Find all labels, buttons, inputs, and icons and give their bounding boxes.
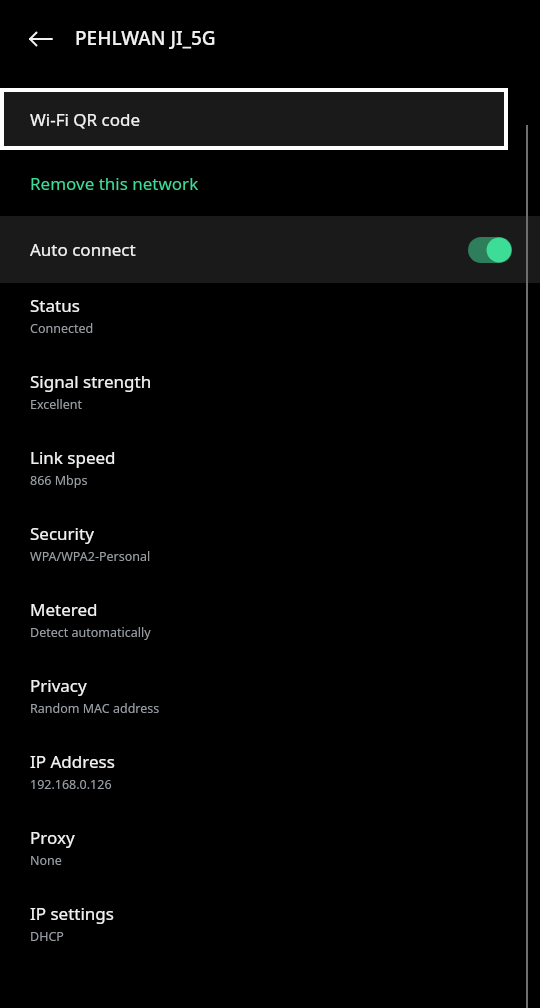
button[interactable]: Back: [19, 17, 63, 61]
staticText: IP Address: [30, 750, 115, 773]
button[interactable]: Privacy: [0, 663, 540, 739]
staticText: Link speed: [30, 446, 116, 469]
staticText: Proxy: [30, 826, 75, 849]
staticText: Random MAC address: [30, 700, 160, 717]
button[interactable]: Link speed: [0, 435, 540, 511]
staticText: 866 Mbps: [30, 472, 88, 489]
button[interactable]: Signal strength: [0, 359, 540, 435]
staticText: Wi-Fi QR code: [30, 108, 141, 131]
staticText: Detect automatically: [30, 624, 151, 641]
staticText: Auto connect: [30, 238, 136, 261]
staticText: Signal strength: [30, 370, 152, 393]
button[interactable]: IP Address: [0, 739, 540, 815]
staticText: IP settings: [30, 902, 114, 925]
button[interactable]: IP settings: [0, 891, 540, 967]
staticText: PEHLWAN JI_5G: [75, 25, 216, 51]
staticText: Privacy: [30, 674, 87, 697]
button[interactable]: Metered: [0, 587, 540, 663]
button[interactable]: Remove this network: [0, 150, 540, 216]
staticText: Metered: [30, 598, 98, 621]
staticText: Security: [30, 522, 94, 545]
staticText: None: [30, 852, 62, 869]
staticText: Excellent: [30, 396, 83, 413]
staticText: WPA/WPA2-Personal: [30, 548, 151, 565]
button[interactable]: Wi-Fi QR code: [4, 92, 504, 146]
button[interactable]: Proxy: [0, 815, 540, 891]
staticText: DHCP: [30, 928, 64, 945]
button[interactable]: Auto connect: [0, 216, 540, 283]
staticText: Status: [30, 294, 80, 317]
staticText: Remove this network: [30, 172, 199, 195]
button[interactable]: Security: [0, 511, 540, 587]
staticText: 192.168.0.126: [30, 776, 112, 793]
staticText: Connected: [30, 320, 94, 337]
button[interactable]: Status: [0, 283, 540, 359]
